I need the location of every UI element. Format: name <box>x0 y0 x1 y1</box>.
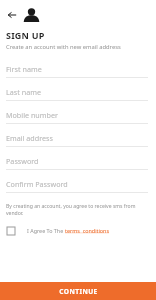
staticText: Mobile number <box>6 110 58 120</box>
staticText: CONTINUE <box>59 287 98 296</box>
button[interactable]: I agree checkbox <box>6 226 15 235</box>
staticText: First name <box>6 64 42 74</box>
button[interactable]: Password <box>6 152 148 170</box>
staticText: I Agree To The <box>27 227 65 234</box>
staticText: By creating an account, you agree to rec… <box>6 203 148 217</box>
button[interactable]: Back <box>5 8 19 22</box>
button[interactable]: Email address <box>6 129 148 147</box>
button[interactable]: First name <box>6 60 148 78</box>
staticText: Email address <box>6 133 53 143</box>
staticText: Last name <box>6 87 41 97</box>
button[interactable]: CONTINUE <box>0 282 156 300</box>
staticText: SIGN UP <box>6 29 45 41</box>
staticText: Create an account with new email address <box>6 43 121 51</box>
staticText: Password <box>6 156 39 166</box>
button[interactable]: Account <box>21 5 41 25</box>
button[interactable]: I agree checkbox <box>6 226 148 235</box>
button[interactable]: terms conditions <box>65 227 110 234</box>
button[interactable]: Mobile number <box>6 106 148 124</box>
staticText: Confirm Password <box>6 179 68 189</box>
button[interactable]: Last name <box>6 83 148 101</box>
button[interactable]: Confirm Password <box>6 175 148 193</box>
